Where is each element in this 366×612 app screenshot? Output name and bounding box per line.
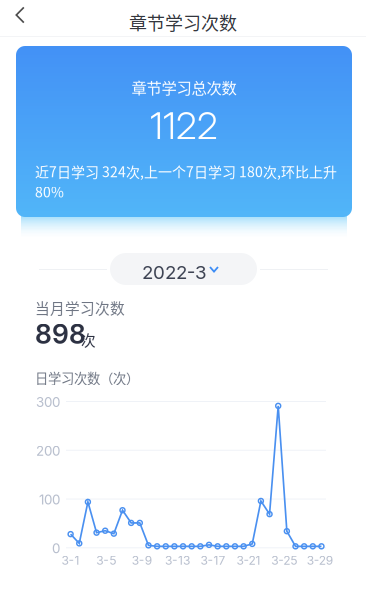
staticText: 近7日学习 324次,上一个7日学习 180次,环比上升80% [35,161,337,201]
staticText: 3-5 [96,553,116,567]
staticText: 3-21 [237,553,261,567]
staticText: 当月学习次数 [35,297,125,318]
staticText: 日学习次数（次） [35,368,139,387]
staticText: 次 [81,329,96,350]
staticText: 3-9 [132,553,152,567]
staticText: 100 [39,491,60,508]
staticText: 300 [36,394,60,410]
staticText: 3-25 [271,553,297,567]
staticText: 章节学习总次数 [131,76,236,98]
staticText: 章节学习次数 [129,9,237,35]
staticText: 200 [36,443,60,459]
staticText: 2022-3 [142,261,207,284]
staticText: 3-17 [200,553,225,567]
staticText: 3-29 [307,553,333,567]
button[interactable]: 2022-3 [110,253,257,285]
staticText: 1122 [150,103,218,148]
button[interactable]: Back [0,0,42,34]
staticText: 898 [35,318,86,350]
staticText: 0 [52,540,60,556]
staticText: 3-1 [62,553,80,567]
staticText: 3-13 [165,553,190,567]
